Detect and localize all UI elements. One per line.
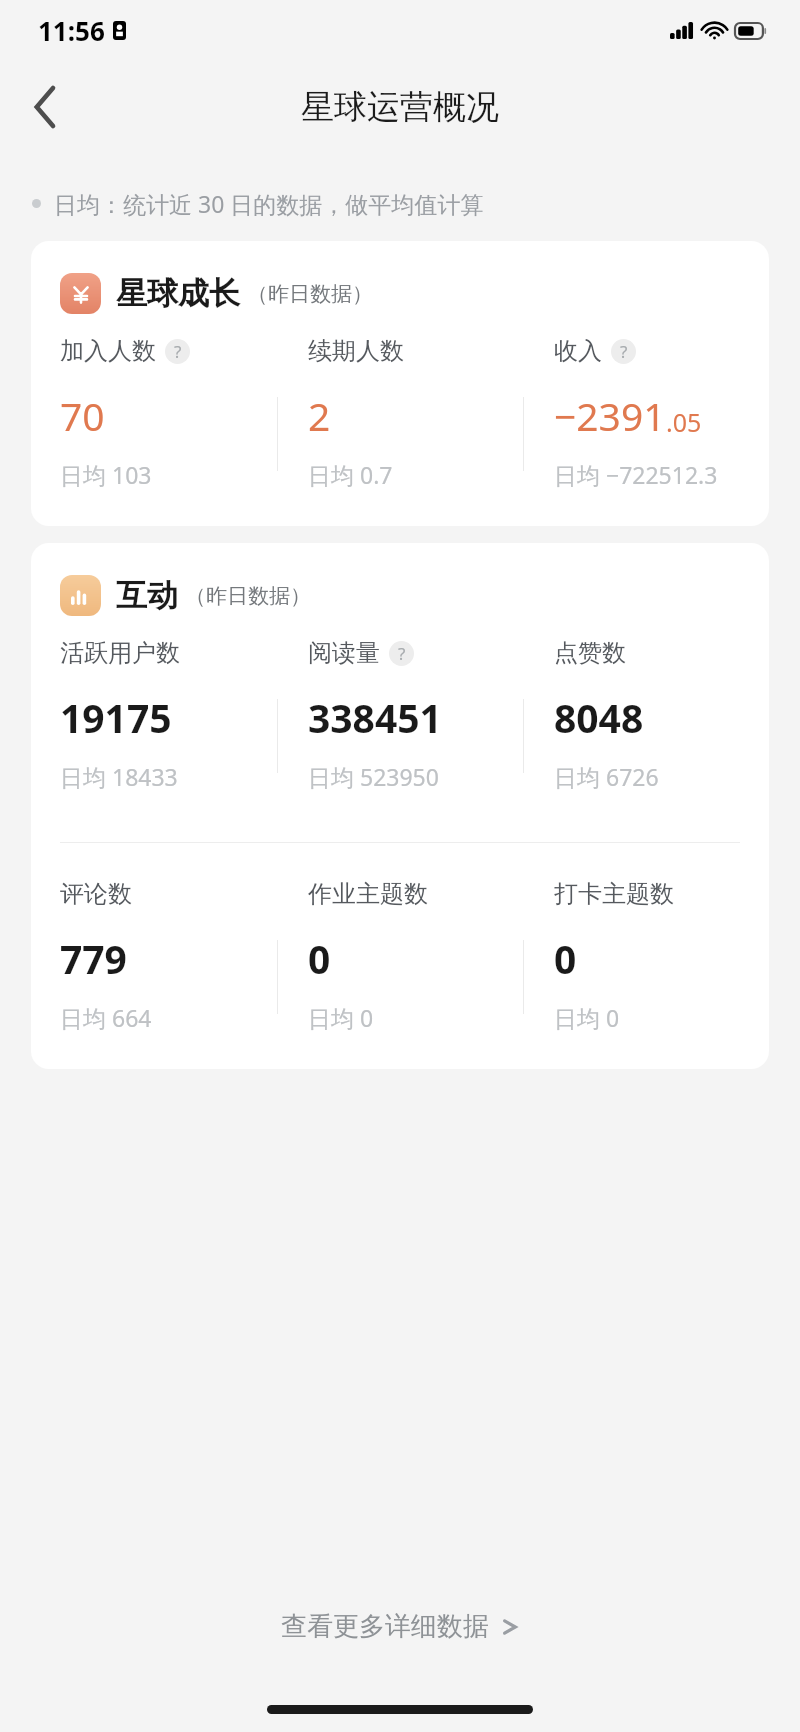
staticText: 作业主题数 <box>308 879 428 909</box>
staticText: .05 <box>666 405 702 439</box>
staticText: 779 <box>60 932 127 985</box>
staticText: −2391 <box>554 389 666 442</box>
button[interactable]: 查看更多详细数据 <box>263 1600 537 1653</box>
staticText: 日均 −722512.3 <box>554 459 718 490</box>
staticText: 日均 0 <box>554 1002 620 1033</box>
staticText: （昨日数据） <box>185 583 311 609</box>
staticText: ? <box>174 340 182 363</box>
staticText: 日均：统计近 30 日的数据，做平均值计算 <box>54 188 484 219</box>
staticText: 评论数 <box>60 879 132 909</box>
button[interactable]: 星球成长 <box>31 241 769 526</box>
staticText: 阅读量 <box>308 638 380 668</box>
staticText: 星球成长 <box>116 274 240 313</box>
button[interactable]: Help <box>389 641 414 666</box>
staticText: 11:56 <box>38 13 105 48</box>
staticText: 续期人数 <box>308 336 404 366</box>
staticText: 查看更多详细数据 <box>281 1610 489 1643</box>
staticText: 收入 <box>554 336 602 366</box>
staticText: ? <box>398 642 406 665</box>
button[interactable]: Help <box>611 339 636 364</box>
staticText: 打卡主题数 <box>554 879 674 909</box>
staticText: （昨日数据） <box>247 281 373 307</box>
button[interactable]: 互动 <box>31 543 769 1069</box>
staticText: 0 <box>554 932 577 985</box>
staticText: 19175 <box>60 691 172 744</box>
staticText: 8048 <box>554 691 644 744</box>
staticText: 日均 664 <box>60 1002 152 1033</box>
staticText: 互动 <box>116 576 178 615</box>
staticText: 日均 0 <box>308 1002 374 1033</box>
staticText: 星球运营概况 <box>301 86 499 128</box>
staticText: 0 <box>308 932 331 985</box>
staticText: ? <box>620 340 628 363</box>
button[interactable]: Help <box>165 339 190 364</box>
button[interactable]: Back <box>14 75 78 139</box>
staticText: 70 <box>60 389 105 442</box>
staticText: 活跃用户数 <box>60 638 180 668</box>
staticText: 日均 6726 <box>554 761 659 792</box>
staticText: 日均 103 <box>60 459 152 490</box>
staticText: 日均 18433 <box>60 761 178 792</box>
staticText: 2 <box>308 389 331 442</box>
staticText: 点赞数 <box>554 638 626 668</box>
staticText: 日均 523950 <box>308 761 439 792</box>
staticText: 日均 0.7 <box>308 459 393 490</box>
staticText: 加入人数 <box>60 336 156 366</box>
staticText: 338451 <box>308 691 442 744</box>
